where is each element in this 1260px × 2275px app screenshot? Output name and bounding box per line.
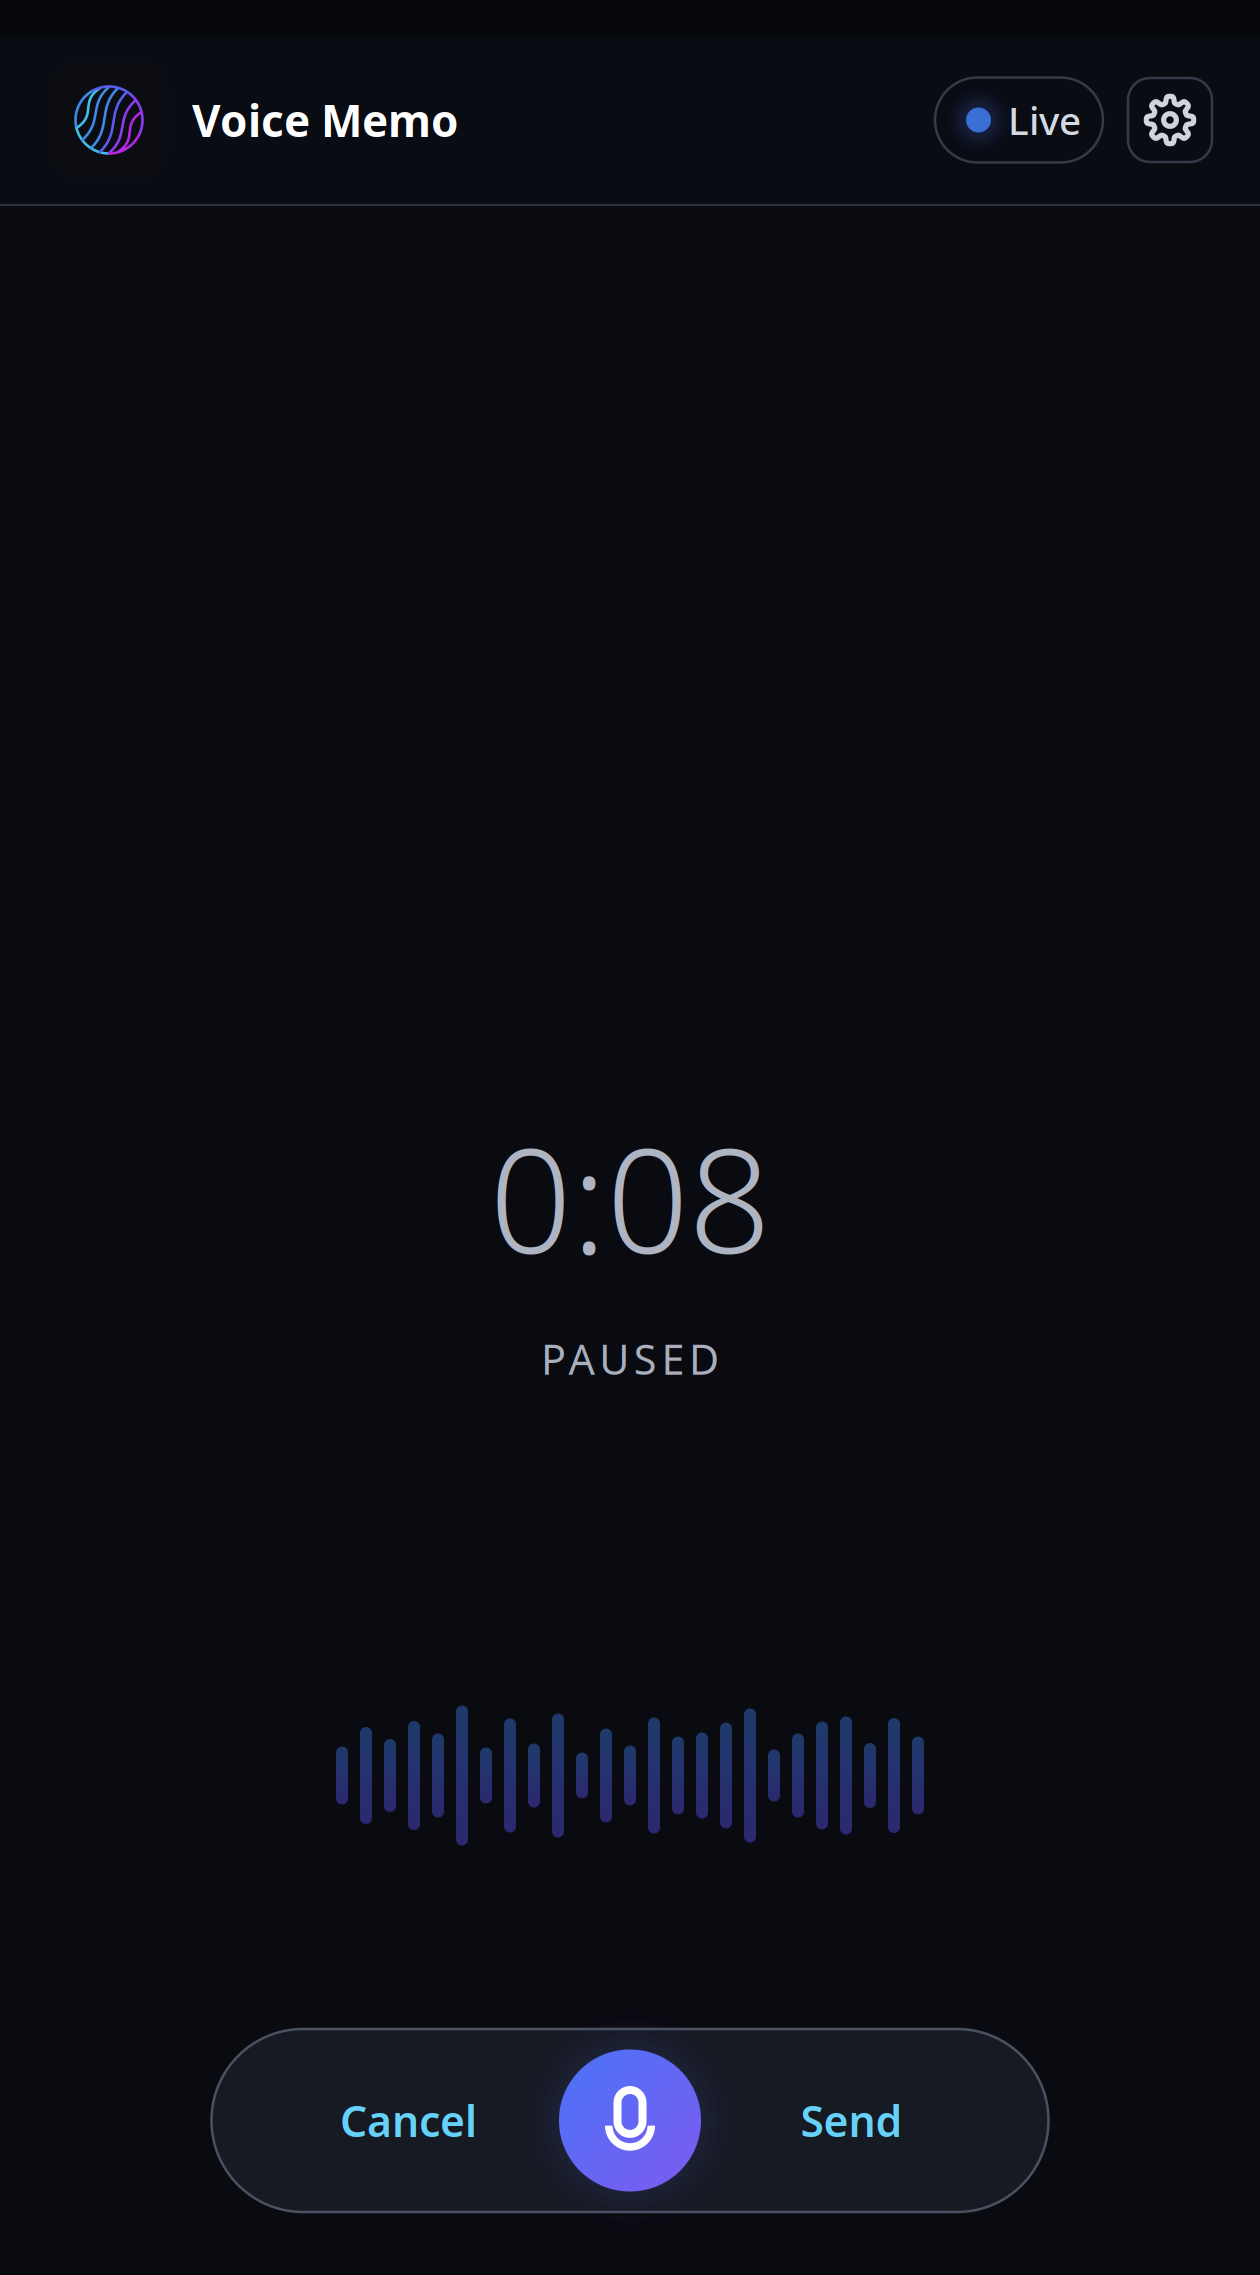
button[interactable]: Record (558, 2049, 701, 2192)
staticText: Live (1008, 94, 1081, 146)
button[interactable]: Live (935, 77, 1103, 162)
staticText: Cancel (340, 2092, 477, 2149)
staticText: Voice Memo (192, 91, 459, 149)
button[interactable]: Settings (1128, 78, 1212, 162)
button[interactable]: Send (701, 2050, 1001, 2190)
staticText: PAUSED (541, 1331, 719, 1386)
staticText: Send (800, 2092, 902, 2149)
staticText: 0:08 (489, 1102, 770, 1293)
button[interactable]: Cancel (258, 2050, 558, 2190)
